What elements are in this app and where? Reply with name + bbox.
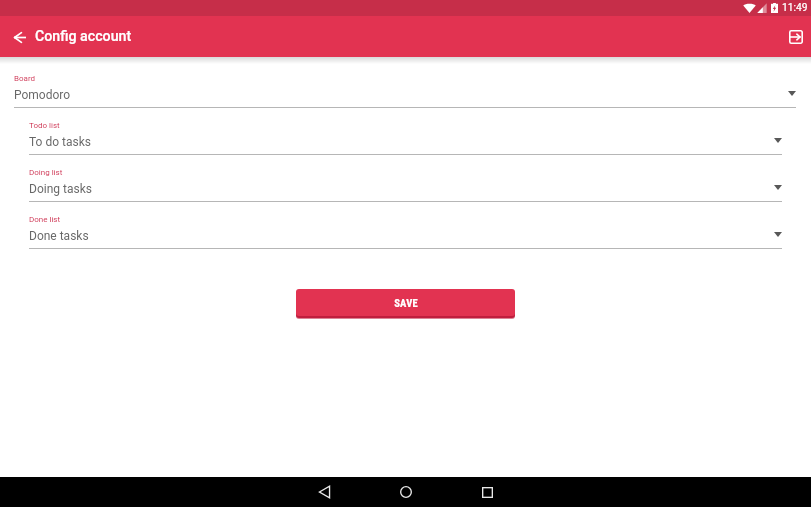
staticText: Done tasks [29,229,89,243]
staticText: Config account [35,28,132,45]
staticText: Doing tasks [29,182,92,196]
staticText: Board [14,74,36,83]
staticText: Doing list [29,168,63,177]
button[interactable]: SAVE [296,289,515,316]
button[interactable]: Log out [782,23,810,51]
staticText: Todo list [29,121,60,130]
staticText: To do tasks [29,135,91,149]
button[interactable]: Todo list [0,119,811,155]
button[interactable]: Doing list [0,166,811,202]
button[interactable]: Board [0,72,811,108]
button[interactable]: Home [391,477,421,507]
button[interactable]: Recent apps [463,477,512,507]
button[interactable]: Navigate up [6,23,34,51]
staticText: SAVE [394,297,418,309]
button[interactable]: Done list [0,213,811,249]
staticText: 11:49 [782,2,808,14]
staticText: Done list [29,215,61,224]
button[interactable]: Back [300,477,349,507]
staticText: Pomodoro [14,88,71,102]
